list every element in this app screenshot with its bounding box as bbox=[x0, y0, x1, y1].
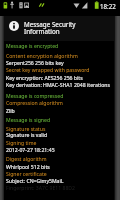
staticText: Whirlpool 512 bits bbox=[6, 163, 50, 170]
staticText: 2012-07-27 18:21:45 bbox=[6, 146, 55, 153]
staticText: 18:22 bbox=[100, 2, 116, 10]
staticText: Signing time bbox=[6, 139, 37, 146]
staticText: Key derivation: HMAC-SHA1 2048 iteration… bbox=[6, 81, 110, 88]
staticText: Message is encrypted bbox=[6, 42, 59, 49]
staticText: Signer certificate bbox=[6, 170, 47, 177]
staticText: Content encryption algorithm bbox=[6, 52, 78, 59]
staticText: Message is signed bbox=[6, 116, 51, 123]
staticText: Message is compressed bbox=[6, 92, 64, 99]
staticText: Secret key wrapped with password bbox=[6, 66, 90, 73]
staticText: Subject: CN=Gimy5MaiL bbox=[6, 177, 64, 184]
staticText: Fingerprint: 3A7C 9E11 88D2 bbox=[6, 184, 76, 191]
staticText: Serpent256 256 bits key bbox=[6, 59, 64, 66]
staticText: Zlib bbox=[6, 107, 15, 114]
staticText: Key encryption: AES256 256 bits bbox=[6, 74, 83, 81]
staticText: Information bbox=[24, 27, 60, 36]
staticText: Signature is valid bbox=[6, 131, 48, 138]
staticText: Signature status bbox=[6, 125, 46, 132]
staticText: Message Security bbox=[24, 20, 76, 29]
other: Information bbox=[9, 21, 19, 31]
staticText: Digest algorithm bbox=[6, 155, 47, 162]
staticText: Compression algorithm bbox=[6, 99, 63, 106]
button[interactable]: Information bbox=[4, 16, 114, 41]
